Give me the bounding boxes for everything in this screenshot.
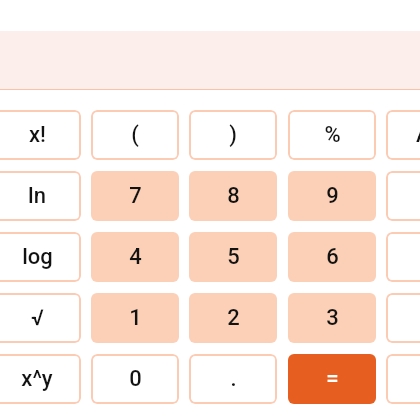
button[interactable]: Power	[0, 354, 81, 404]
button[interactable]: Equals	[288, 354, 376, 404]
button[interactable]: Multiply	[386, 232, 420, 282]
staticText: 4	[129, 244, 142, 270]
button[interactable]: Four	[91, 232, 179, 282]
staticText: x!	[29, 122, 46, 148]
staticText: ln	[28, 183, 46, 209]
staticText: 3	[326, 305, 339, 331]
staticText: 8	[227, 183, 240, 209]
button[interactable]: Square root	[0, 293, 81, 343]
staticText: .	[230, 366, 237, 392]
button[interactable]: Logarithm	[0, 232, 81, 282]
button[interactable]: Natural logarithm	[0, 171, 81, 221]
button[interactable]: Decimal point	[189, 354, 277, 404]
staticText: AC	[416, 122, 420, 148]
staticText: 0	[129, 366, 142, 392]
button[interactable]: Minus	[386, 293, 420, 343]
staticText: 2	[227, 305, 240, 331]
staticText: log	[22, 244, 53, 270]
staticText: 1	[129, 305, 142, 331]
button[interactable]: Eight	[189, 171, 277, 221]
button[interactable]: Five	[189, 232, 277, 282]
button[interactable]: Seven	[91, 171, 179, 221]
staticText: )	[229, 122, 237, 148]
staticText: 9	[326, 183, 339, 209]
button[interactable]: Factorial	[0, 110, 81, 160]
button[interactable]: Zero	[91, 354, 179, 404]
button[interactable]: Six	[288, 232, 376, 282]
button[interactable]: Open bracket	[91, 110, 179, 160]
button[interactable]: Close bracket	[189, 110, 277, 160]
button[interactable]: Two	[189, 293, 277, 343]
staticText: (	[131, 122, 139, 148]
staticText: 6	[326, 244, 339, 270]
button[interactable]: All clear	[386, 110, 420, 160]
button[interactable]: Nine	[288, 171, 376, 221]
button[interactable]: Divide	[386, 171, 420, 221]
button[interactable]: Plus	[386, 354, 420, 404]
staticText: 7	[129, 183, 142, 209]
button[interactable]: Three	[288, 293, 376, 343]
button[interactable]: Percent	[288, 110, 376, 160]
staticText: =	[326, 366, 339, 392]
staticText: 5	[227, 244, 240, 270]
staticText: x^y	[21, 366, 53, 392]
button[interactable]: One	[91, 293, 179, 343]
staticText: %	[324, 122, 341, 148]
staticText: √	[31, 305, 44, 331]
